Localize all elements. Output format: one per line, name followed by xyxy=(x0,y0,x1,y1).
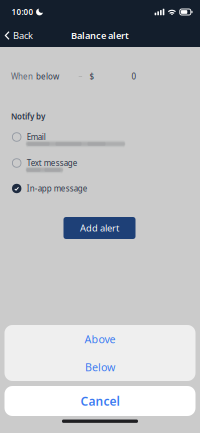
staticText: 0 xyxy=(131,71,136,82)
button[interactable]: below xyxy=(33,68,62,85)
button[interactable]: Email xyxy=(0,130,200,143)
staticText: When xyxy=(11,71,33,82)
button[interactable]: In-app message xyxy=(0,182,200,195)
staticText: below xyxy=(36,71,59,82)
button[interactable]: Text message xyxy=(0,156,200,169)
staticText: Above xyxy=(84,332,115,346)
button[interactable]: Add alert xyxy=(63,217,135,239)
staticText: In-app message xyxy=(27,183,88,194)
staticText: Text message xyxy=(27,158,78,168)
button[interactable]: Back xyxy=(0,25,38,46)
staticText: $ xyxy=(89,71,94,82)
button[interactable]: Above xyxy=(4,325,195,353)
staticText: 10:00 xyxy=(11,7,33,17)
staticText: Cancel xyxy=(80,393,119,409)
staticText: Back xyxy=(13,29,33,42)
staticText: Balance alert xyxy=(71,29,129,42)
staticText: Notify by xyxy=(11,111,45,122)
staticText: Below xyxy=(85,360,115,374)
staticText: Email xyxy=(27,132,46,142)
staticText: Add alert xyxy=(80,222,119,234)
button[interactable]: Cancel xyxy=(4,386,195,416)
button[interactable]: Below xyxy=(4,353,195,381)
